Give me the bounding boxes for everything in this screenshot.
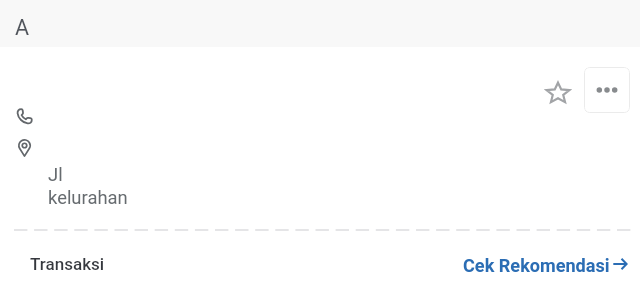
- staticText: Transaksi: [30, 254, 105, 274]
- button[interactable]: Favorite: [540, 76, 576, 112]
- staticText: Cek Rekomendasi: [463, 255, 610, 276]
- button[interactable]: Call: [7, 99, 41, 133]
- staticText: Jl: [48, 164, 63, 186]
- button[interactable]: Cek Rekomendasi: [455, 247, 635, 283]
- staticText: A: [15, 15, 30, 40]
- staticText: kelurahan: [48, 187, 128, 209]
- button[interactable]: Jl: [7, 132, 437, 214]
- button[interactable]: More options: [584, 67, 630, 113]
- button[interactable]: Transaksi: [16, 243, 176, 287]
